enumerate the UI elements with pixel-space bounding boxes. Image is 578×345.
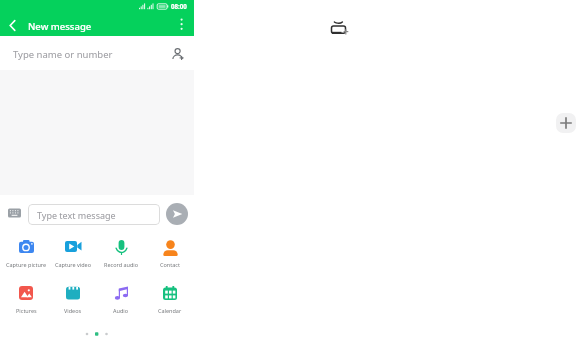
button[interactable]: Capture picture	[2, 237, 50, 272]
staticText: Audio	[113, 307, 129, 314]
staticText: New message	[28, 20, 92, 33]
staticText: Contact	[160, 261, 180, 268]
staticText: Capture picture	[6, 261, 47, 268]
button[interactable]	[556, 113, 576, 133]
button[interactable]: Videos	[49, 283, 97, 318]
button[interactable]	[174, 14, 192, 36]
button[interactable]: Capture video	[49, 237, 97, 272]
button[interactable]: Audio	[97, 283, 145, 318]
staticText: Calendar	[158, 307, 182, 314]
button[interactable]: Record audio	[97, 237, 145, 272]
staticText: Record audio	[104, 261, 139, 268]
button[interactable]	[172, 48, 184, 60]
button[interactable]	[4, 15, 22, 35]
button[interactable]	[8, 208, 21, 218]
staticText: 08:00	[171, 2, 187, 10]
staticText: Pictures	[16, 307, 37, 314]
staticText: Capture video	[55, 261, 92, 268]
button[interactable]: Pictures	[2, 283, 50, 318]
button[interactable]	[166, 203, 188, 225]
button[interactable]: Contact	[146, 237, 194, 272]
button[interactable]	[0, 36, 194, 70]
staticText: Videos	[64, 307, 82, 314]
staticText: Type name or number	[13, 48, 113, 61]
button[interactable]	[330, 19, 349, 36]
button[interactable]: Calendar	[146, 283, 194, 318]
button[interactable]	[28, 204, 160, 225]
staticText: Type text message	[37, 209, 116, 221]
